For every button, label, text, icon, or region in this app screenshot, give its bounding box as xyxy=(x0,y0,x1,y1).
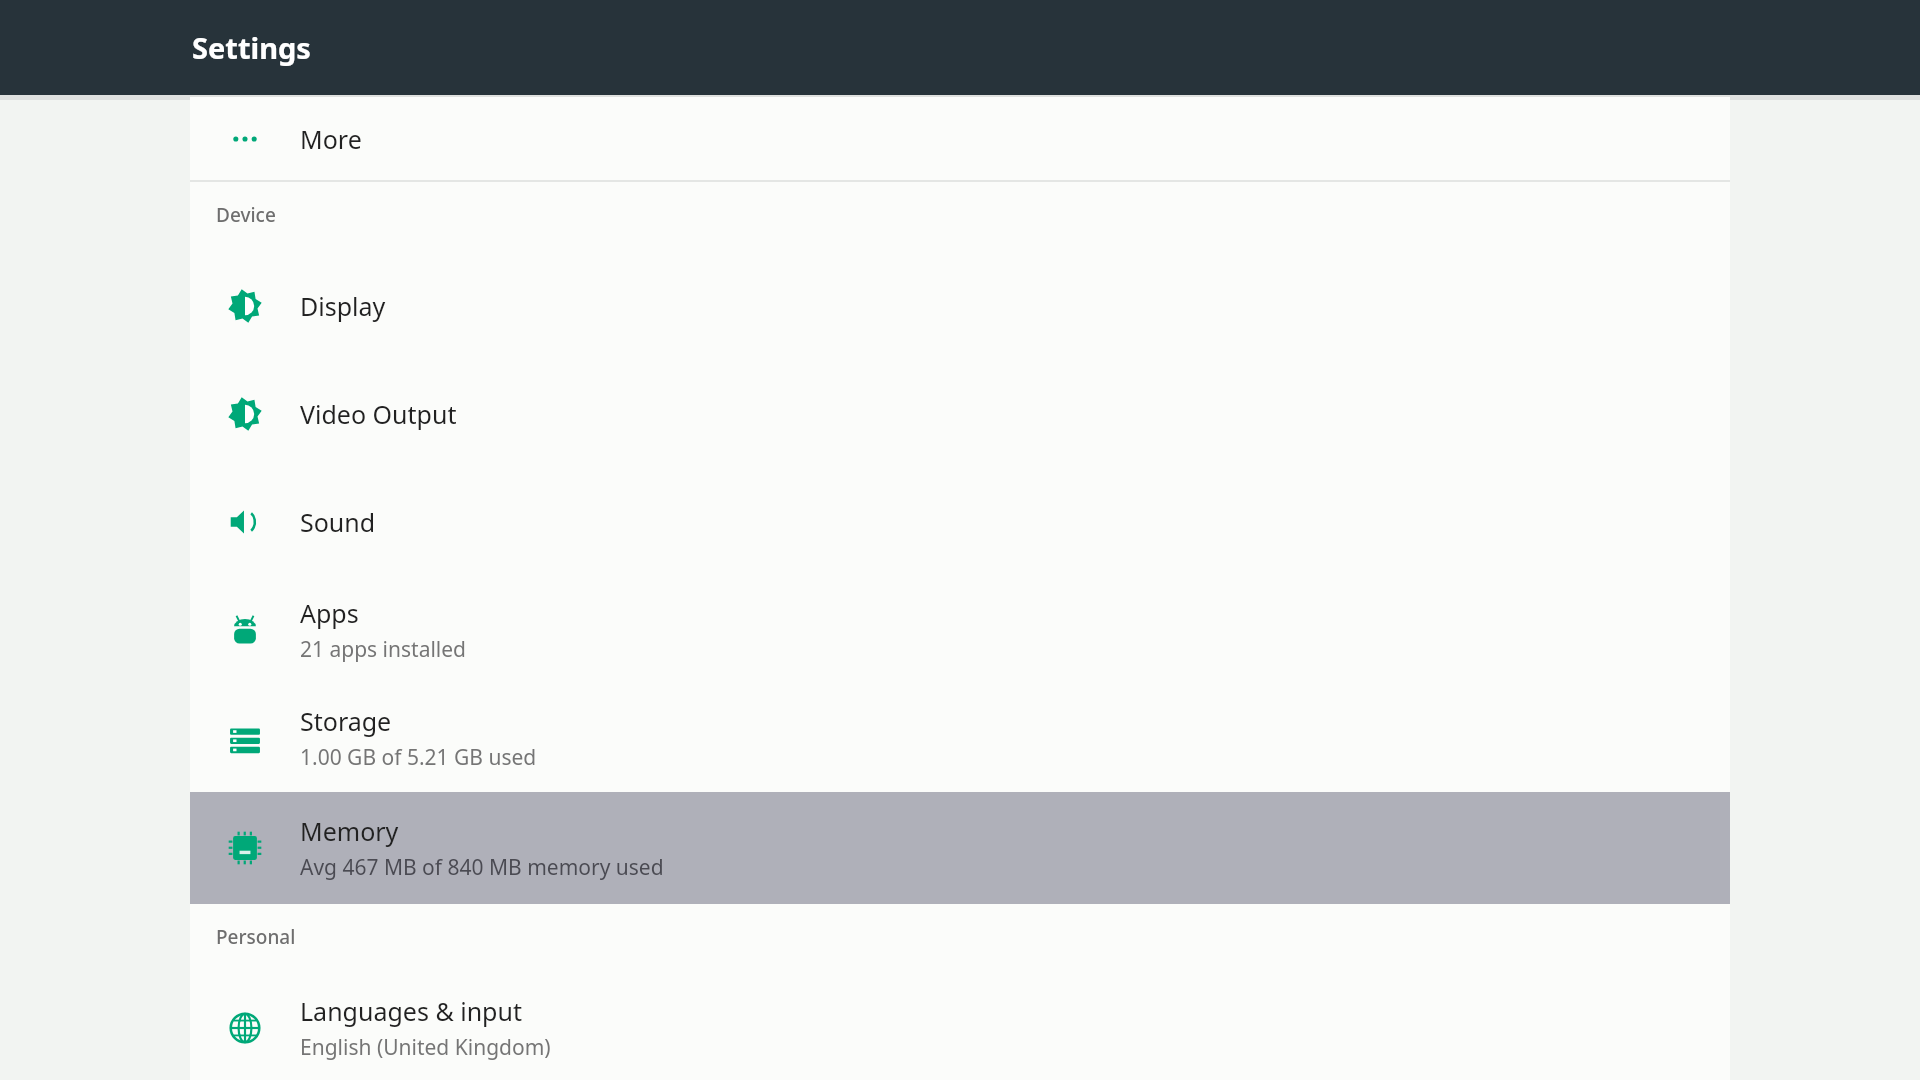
other: Apps xyxy=(228,613,262,647)
button[interactable]: Display xyxy=(190,360,1730,468)
other: Languages and input xyxy=(228,1011,262,1045)
other: Storage xyxy=(228,721,262,755)
staticText: Personal xyxy=(216,924,296,950)
staticText: 1.00 GB of 5.21 GB used xyxy=(300,743,537,772)
staticText: Storage xyxy=(300,704,392,738)
staticText: More xyxy=(300,122,362,156)
button[interactable]: Memory xyxy=(190,792,1730,904)
staticText: Device xyxy=(216,202,276,228)
button[interactable]: More xyxy=(190,97,1730,180)
button[interactable]: Languages and input xyxy=(190,974,1730,1080)
staticText: Settings xyxy=(192,28,311,67)
staticText: Avg 467 MB of 840 MB memory used xyxy=(300,853,664,882)
button[interactable]: Sound xyxy=(190,468,1730,576)
staticText: 21 apps installed xyxy=(300,635,467,664)
staticText: Sound xyxy=(300,505,376,539)
other: Display xyxy=(228,397,262,431)
staticText: Video Output xyxy=(300,397,457,431)
button[interactable]: Display xyxy=(190,252,1730,360)
staticText: Languages & input xyxy=(300,994,522,1028)
other: More xyxy=(228,122,262,156)
staticText: Display xyxy=(300,289,386,323)
other: Memory xyxy=(228,831,262,865)
button[interactable]: Apps xyxy=(190,576,1730,684)
staticText: Memory xyxy=(300,814,399,848)
staticText: English (United Kingdom) xyxy=(300,1033,551,1062)
other: Sound xyxy=(228,505,262,539)
button[interactable]: Storage xyxy=(190,684,1730,792)
staticText: Apps xyxy=(300,596,359,630)
other: Display xyxy=(228,289,262,323)
